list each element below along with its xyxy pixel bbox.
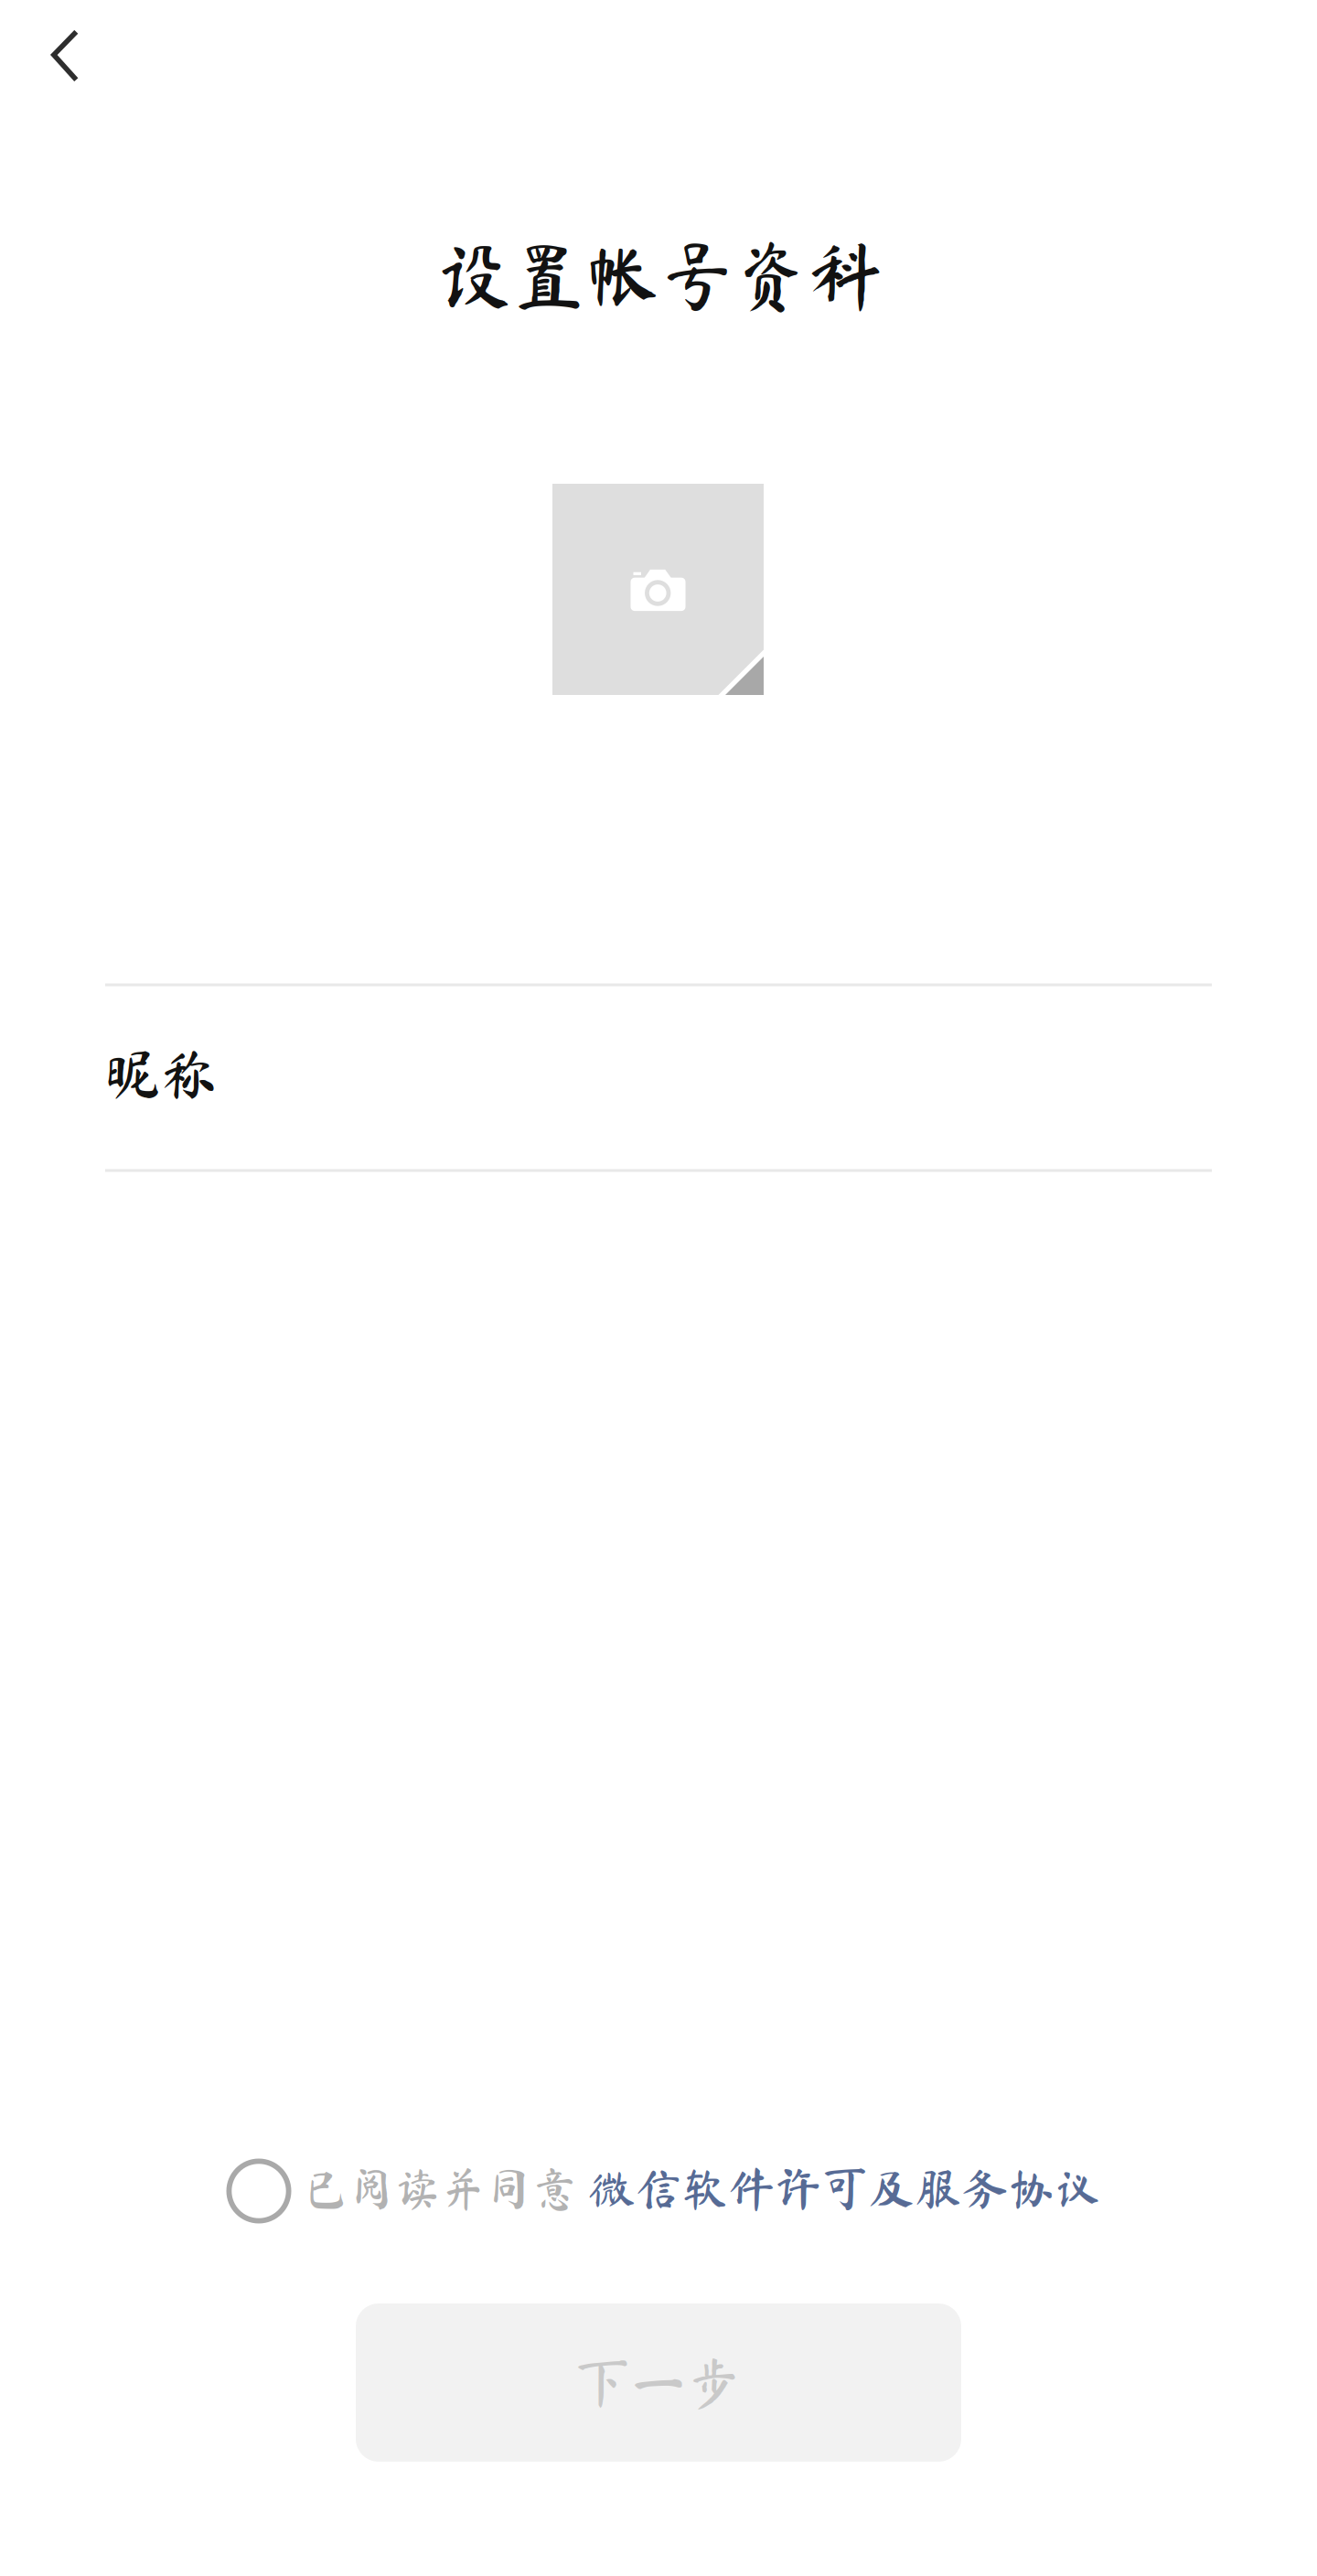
button[interactable]: 已阅读并同意 bbox=[226, 2159, 1102, 2223]
button[interactable]: Back bbox=[5, 0, 124, 115]
staticText: 已阅读并同意 bbox=[303, 2165, 578, 2211]
staticText: 设置帐号资料 bbox=[438, 238, 883, 312]
staticText: 微信软件许可及服务协议 bbox=[589, 2165, 1102, 2211]
staticText: 昵称 bbox=[105, 1045, 217, 1102]
button[interactable]: Choose profile photo bbox=[552, 484, 764, 695]
button[interactable]: 下一步 bbox=[356, 2303, 961, 2462]
staticText: 下一步 bbox=[575, 2355, 742, 2410]
button[interactable]: 昵称 bbox=[105, 982, 1212, 1165]
